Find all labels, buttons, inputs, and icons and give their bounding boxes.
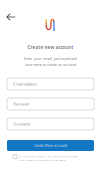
staticText: to our Terms of Use and our Privacy Poli… xyxy=(18,158,66,162)
staticText: username to create an account xyxy=(25,62,76,67)
staticText: Create new account xyxy=(27,44,73,50)
button[interactable]: Create New account xyxy=(7,140,94,151)
staticText: By creating an account, you confirm that… xyxy=(18,155,77,158)
staticText: E-mail address xyxy=(13,81,37,86)
staticText: Enter your email, password and xyxy=(24,56,77,61)
staticText: Username xyxy=(13,121,30,126)
button[interactable]: Password xyxy=(7,98,94,110)
button[interactable]: Back xyxy=(3,10,19,24)
staticText: Create New account xyxy=(34,143,67,148)
staticText: Password xyxy=(13,101,29,106)
button[interactable]: E-mail address xyxy=(7,78,94,90)
button[interactable]: Agree to terms xyxy=(13,155,17,159)
button[interactable]: Username xyxy=(7,118,94,130)
